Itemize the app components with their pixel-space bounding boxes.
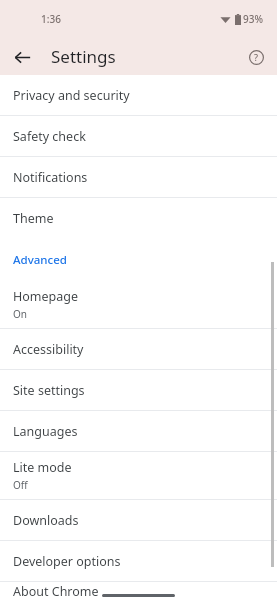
button[interactable]: Accessibility [0,329,277,369]
staticText: ? [254,51,259,63]
button[interactable]: Privacy and security [0,75,277,115]
button[interactable]: Downloads [0,500,277,540]
staticText: Lite mode [13,459,72,476]
button[interactable]: Notifications [0,157,277,197]
button[interactable]: Help [240,41,272,73]
staticText: Downloads [13,512,79,529]
button[interactable]: Back [6,41,38,73]
button[interactable]: Developer options [0,541,277,581]
staticText: Site settings [13,382,85,399]
button[interactable]: Homepage [0,281,277,328]
staticText: Safety check [13,128,86,145]
staticText: 1:36 [41,12,61,26]
staticText: Off [13,478,28,492]
button[interactable]: Languages [0,411,277,451]
staticText: Privacy and security [13,87,130,104]
staticText: Settings [51,45,116,68]
staticText: About Chrome [13,583,99,600]
button[interactable]: Lite mode [0,452,277,499]
button[interactable]: Theme [0,198,277,238]
button[interactable]: Site settings [0,370,277,410]
staticText: 93% [243,12,263,26]
staticText: Notifications [13,169,88,186]
button[interactable]: About Chrome [0,582,277,600]
staticText: Theme [13,210,54,227]
button[interactable]: Safety check [0,116,277,156]
staticText: Developer options [13,553,121,570]
staticText: On [13,307,27,321]
staticText: Accessibility [13,341,84,358]
staticText: Advanced [13,252,67,268]
staticText: Languages [13,423,78,440]
staticText: Homepage [13,288,79,305]
button[interactable]: Advanced [0,238,277,281]
